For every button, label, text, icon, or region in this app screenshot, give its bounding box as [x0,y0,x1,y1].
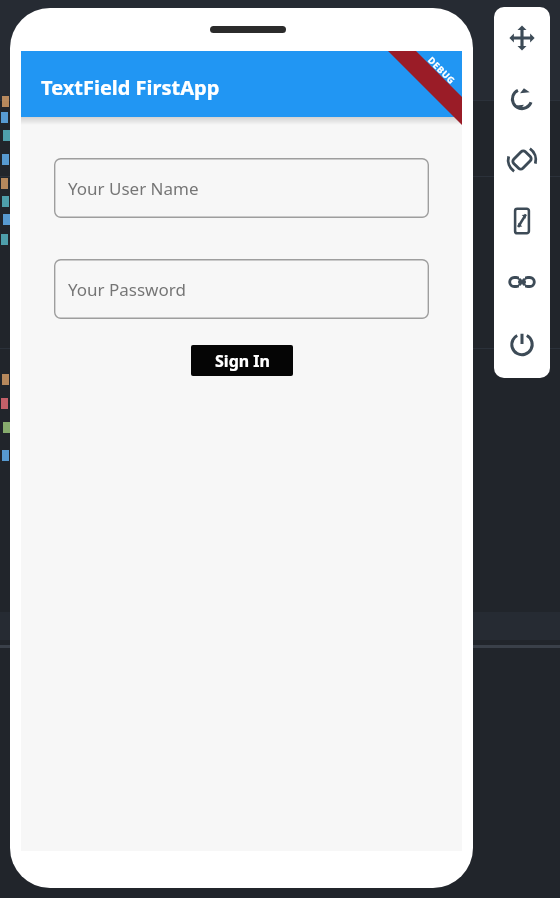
button[interactable]: Your User Name [54,158,429,218]
button[interactable]: Rotate [494,129,550,190]
button[interactable]: Your Password [54,259,429,319]
button[interactable]: Link [494,251,550,312]
button[interactable]: Resize [494,190,550,251]
button[interactable]: Power [494,312,550,373]
staticText: Your User Name [68,177,199,200]
staticText: DEBUG [426,54,458,86]
staticText: Your Password [68,278,186,301]
button[interactable]: Move [494,7,550,68]
staticText: Sign In [215,350,270,372]
button[interactable]: Sign In [191,345,293,376]
staticText: TextField FirstApp [41,74,220,101]
button[interactable]: Hot reload [494,68,550,129]
